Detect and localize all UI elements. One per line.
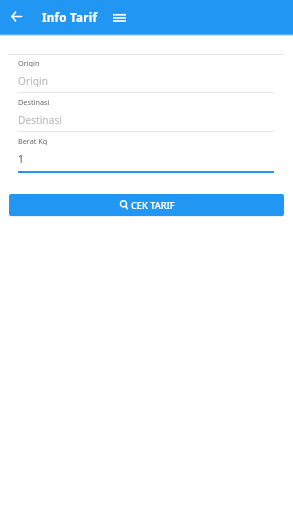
staticText: Origin xyxy=(18,58,40,67)
staticText: Berat Kg xyxy=(18,136,48,145)
staticText: Info Tarif xyxy=(42,10,98,26)
staticText: Origin xyxy=(18,74,48,87)
button[interactable]: CEK TARIF xyxy=(9,194,284,216)
button[interactable]: Destinasi xyxy=(18,94,274,133)
button[interactable]: Menu xyxy=(108,7,131,30)
button[interactable]: Berat Kg xyxy=(18,133,274,172)
staticText: CEK TARIF xyxy=(131,199,175,212)
staticText: Destinasi xyxy=(18,97,50,106)
staticText: 1 xyxy=(18,152,24,165)
button[interactable]: Origin xyxy=(18,55,274,94)
button[interactable]: Back xyxy=(5,5,28,28)
staticText: Destinasi xyxy=(18,113,62,126)
